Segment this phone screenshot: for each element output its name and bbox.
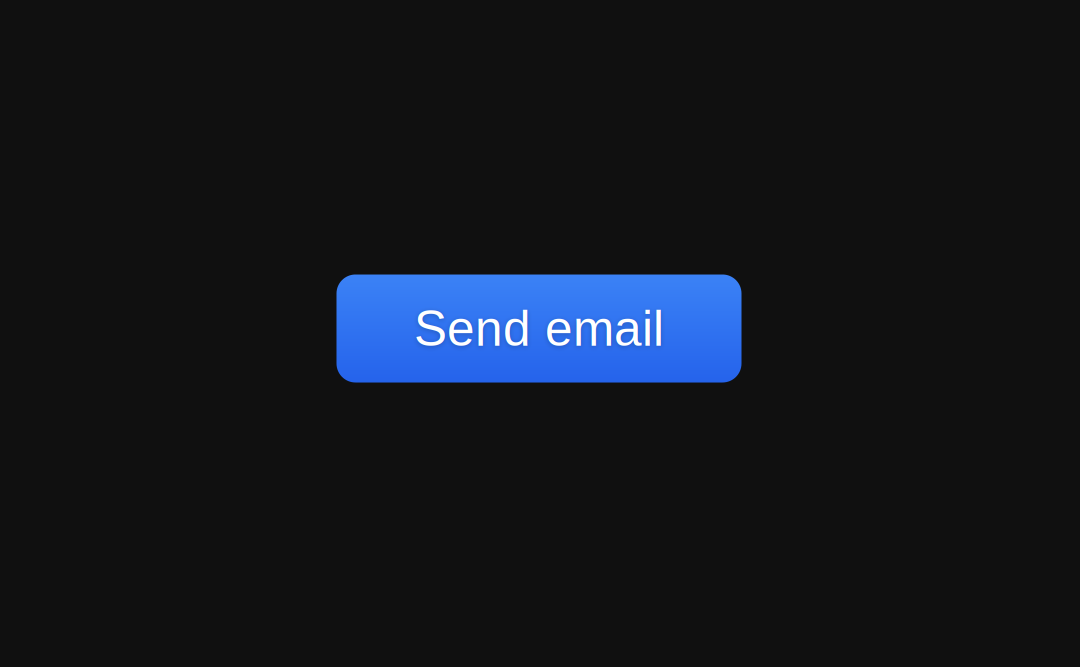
button[interactable]: Send email [336, 274, 741, 382]
staticText: Send email [414, 301, 664, 356]
